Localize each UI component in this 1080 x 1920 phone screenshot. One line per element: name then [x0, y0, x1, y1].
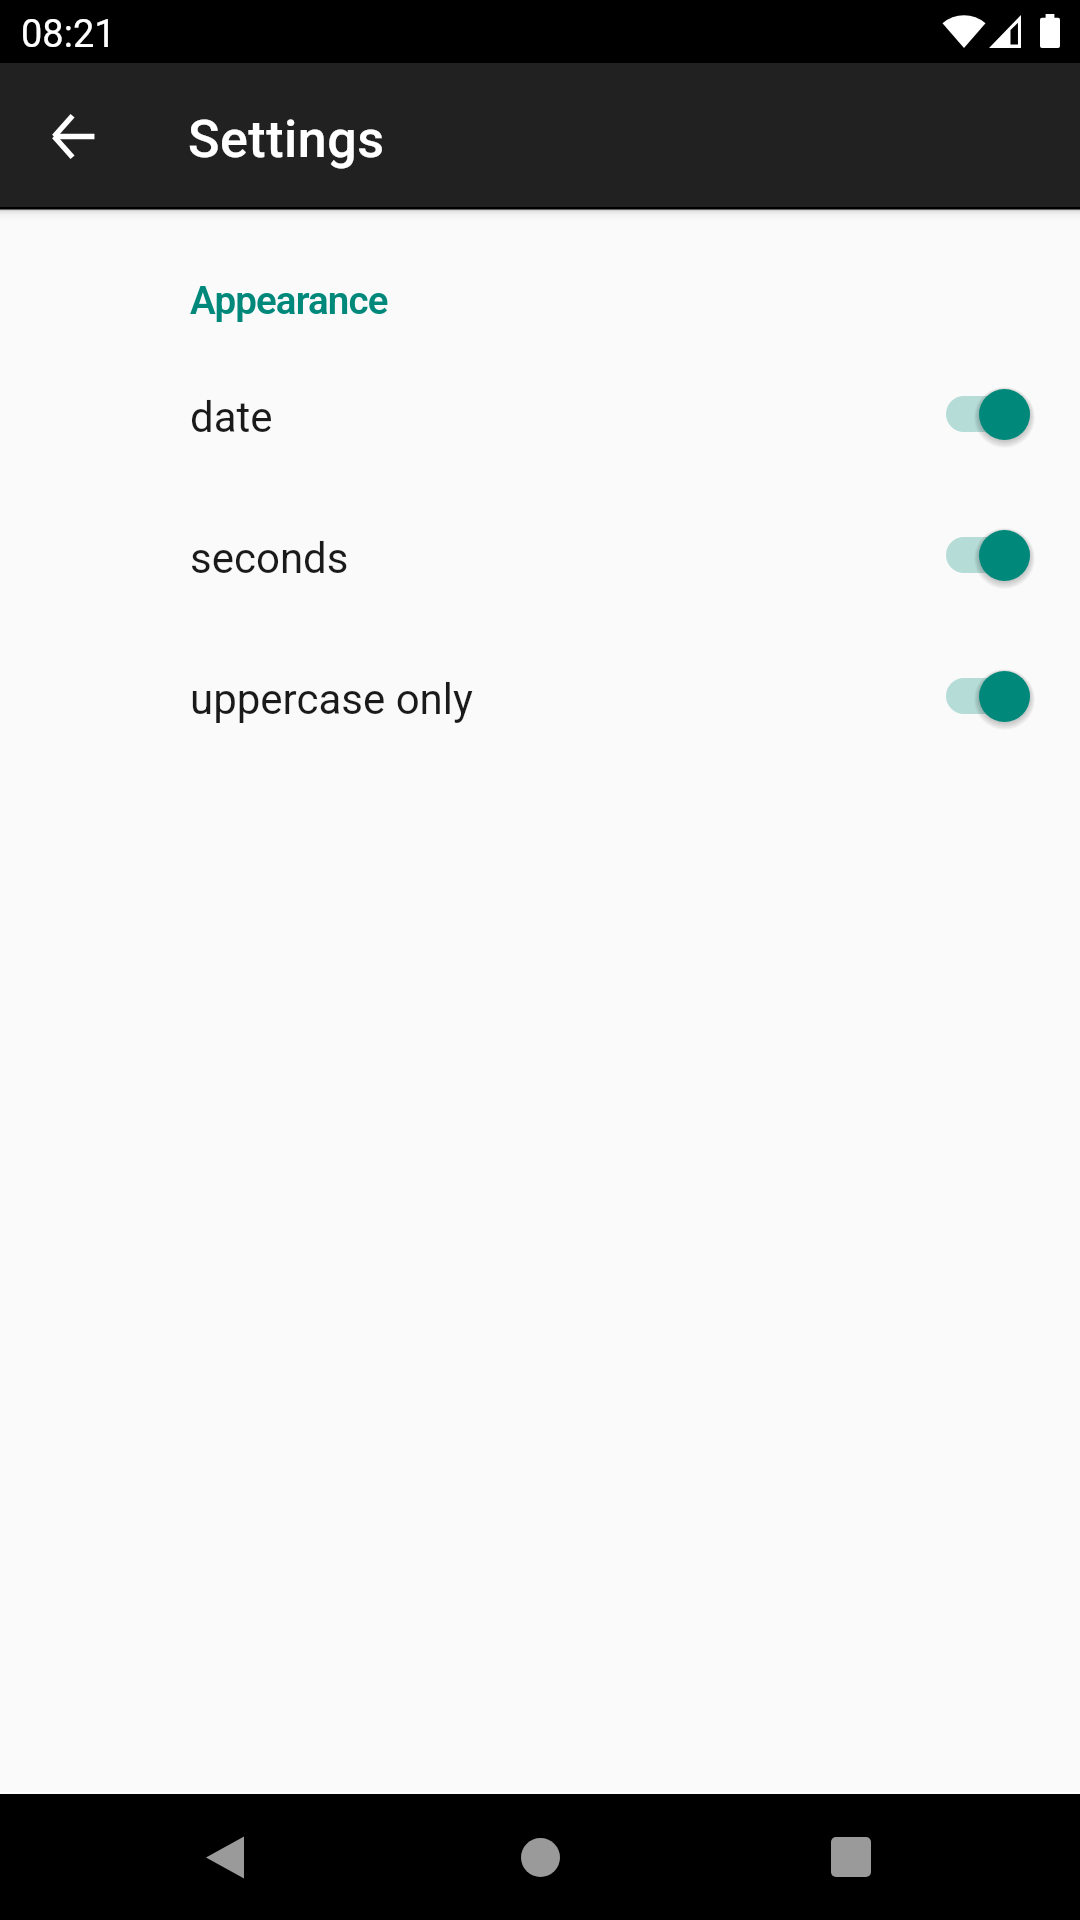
button[interactable]: uppercase only — [0, 630, 1080, 771]
button[interactable]: seconds, on — [946, 521, 1030, 589]
button[interactable]: uppercase only, on — [946, 662, 1030, 730]
button[interactable]: Recent apps — [788, 1794, 914, 1920]
staticText: Settings — [188, 109, 385, 170]
button[interactable]: Home — [477, 1794, 603, 1920]
button[interactable]: seconds — [0, 489, 1080, 630]
staticText: Appearance — [190, 278, 388, 323]
staticText: 08:21 — [21, 12, 116, 57]
staticText: seconds — [190, 534, 349, 583]
button[interactable]: Back — [162, 1794, 288, 1920]
staticText: date — [190, 393, 273, 442]
button[interactable]: date — [0, 348, 1080, 489]
button[interactable]: Navigate up — [30, 93, 116, 179]
staticText: uppercase only — [190, 675, 473, 724]
button[interactable]: date, on — [946, 380, 1030, 448]
